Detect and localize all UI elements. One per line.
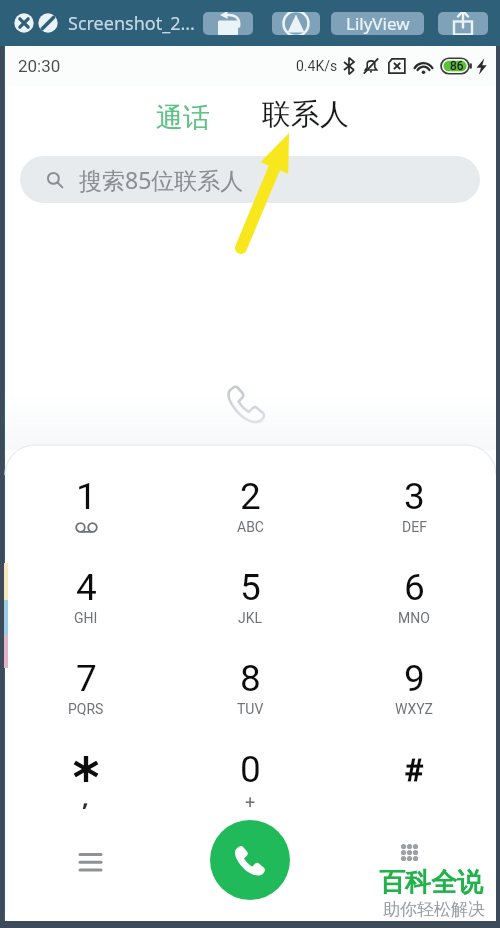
- button[interactable]: LilyView: [331, 12, 424, 35]
- staticText: TUV: [237, 701, 264, 717]
- button[interactable]: 5: [194, 566, 306, 650]
- button[interactable]: 6: [358, 566, 470, 650]
- staticText: DEF: [402, 519, 427, 535]
- staticText: 联系人: [262, 96, 349, 133]
- button[interactable]: 7: [30, 657, 142, 741]
- staticText: +: [245, 791, 256, 812]
- button[interactable]: #: [358, 748, 470, 832]
- button[interactable]: 通话: [146, 93, 220, 143]
- button[interactable]: 0: [194, 748, 306, 832]
- button[interactable]: Star: [30, 748, 142, 840]
- staticText: WXYZ: [395, 701, 433, 717]
- staticText: LilyView: [346, 12, 410, 35]
- button[interactable]: More options: [388, 831, 430, 873]
- staticText: 8: [240, 657, 261, 700]
- button[interactable]: Preview: [272, 12, 320, 35]
- staticText: 6: [404, 566, 425, 609]
- staticText: GHI: [74, 610, 98, 626]
- staticText: 9: [404, 657, 425, 700]
- staticText: JKL: [238, 610, 263, 626]
- staticText: MNO: [398, 610, 430, 626]
- button[interactable]: 8: [194, 657, 306, 741]
- staticText: 0.4K/s: [296, 58, 338, 74]
- staticText: #: [404, 752, 424, 788]
- button[interactable]: Close: [13, 12, 35, 34]
- button[interactable]: 3: [358, 475, 470, 559]
- staticText: 4: [76, 566, 97, 609]
- staticText: 7: [76, 657, 97, 700]
- staticText: 通话: [156, 101, 210, 135]
- staticText: 86: [450, 59, 464, 73]
- staticText: ABC: [237, 519, 264, 535]
- button[interactable]: Call: [210, 820, 290, 900]
- staticText: Screenshot_2...: [68, 11, 195, 36]
- staticText: 1: [76, 475, 97, 518]
- staticText: ,: [82, 780, 89, 813]
- button[interactable]: Block: [37, 12, 59, 34]
- button[interactable]: 1: [30, 475, 142, 559]
- button[interactable]: 4: [30, 566, 142, 650]
- button[interactable]: 联系人: [252, 88, 359, 141]
- staticText: 5: [240, 566, 261, 609]
- button[interactable]: 9: [358, 657, 470, 741]
- button[interactable]: Share: [438, 12, 488, 35]
- button[interactable]: 2: [194, 475, 306, 559]
- staticText: 百科全说: [379, 866, 483, 899]
- staticText: 20:30: [18, 56, 61, 76]
- staticText: 2: [240, 475, 261, 518]
- staticText: PQRS: [68, 701, 104, 717]
- staticText: 0: [240, 748, 261, 791]
- button[interactable]: 搜索85位联系人: [20, 156, 480, 203]
- staticText: 助你轻松解决: [383, 899, 485, 920]
- button[interactable]: Menu: [68, 839, 112, 883]
- staticText: 搜索85位联系人: [79, 164, 244, 195]
- staticText: 3: [404, 475, 425, 518]
- button[interactable]: Rotate: [203, 12, 253, 35]
